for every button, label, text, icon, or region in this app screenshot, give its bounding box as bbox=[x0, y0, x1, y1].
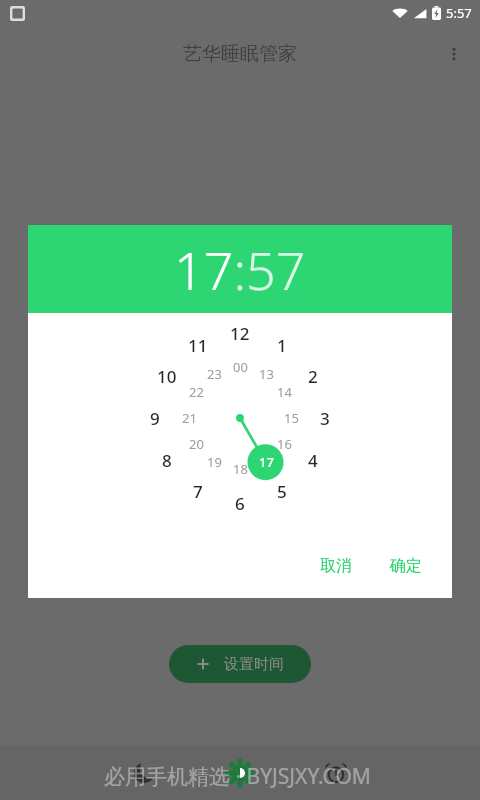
staticText: 确定 bbox=[390, 556, 422, 576]
staticText: 6 bbox=[235, 492, 245, 515]
staticText: 9 bbox=[150, 407, 160, 430]
staticText: 17:57 bbox=[174, 234, 306, 305]
staticText: 10 bbox=[157, 365, 177, 388]
staticText: 15 bbox=[284, 409, 299, 427]
staticText: 取消 bbox=[320, 556, 352, 576]
staticText: 2 bbox=[308, 365, 318, 388]
staticText: 00 bbox=[233, 358, 248, 376]
button[interactable]: 取消 bbox=[308, 548, 364, 584]
staticText: 5 bbox=[277, 480, 287, 503]
staticText: 艺华睡眠管家 bbox=[183, 42, 297, 66]
staticText: 设置时间 bbox=[224, 655, 284, 674]
staticText: 7 bbox=[193, 480, 203, 503]
button[interactable]: Sleep bbox=[96, 746, 192, 800]
staticText: 8 bbox=[162, 449, 172, 472]
staticText: 4 bbox=[308, 449, 318, 472]
staticText: 22 bbox=[189, 383, 204, 401]
button[interactable]: Brightness bbox=[192, 746, 288, 800]
button[interactable]: 确定 bbox=[378, 548, 434, 584]
staticText: 18 bbox=[233, 460, 248, 478]
staticText: 20 bbox=[189, 435, 204, 453]
staticText: 14 bbox=[277, 383, 292, 401]
staticText: 1 bbox=[277, 334, 287, 357]
staticText: 3 bbox=[320, 407, 330, 430]
staticText: 21 bbox=[182, 409, 197, 427]
button[interactable]: 设置时间 bbox=[169, 645, 311, 683]
button[interactable]: More options bbox=[432, 32, 476, 76]
staticText: 19 bbox=[207, 453, 222, 471]
staticText: 16 bbox=[277, 435, 292, 453]
button[interactable]: Alarm bbox=[288, 746, 384, 800]
staticText: 11 bbox=[188, 334, 208, 357]
staticText: 13 bbox=[259, 365, 274, 383]
staticText: 5:57 bbox=[446, 4, 472, 22]
staticText: 12 bbox=[230, 322, 250, 345]
staticText: 23 bbox=[207, 365, 222, 383]
staticText: 必用手机精选 · BYJSJXY.COM bbox=[104, 762, 371, 791]
staticText: 17 bbox=[259, 453, 274, 471]
